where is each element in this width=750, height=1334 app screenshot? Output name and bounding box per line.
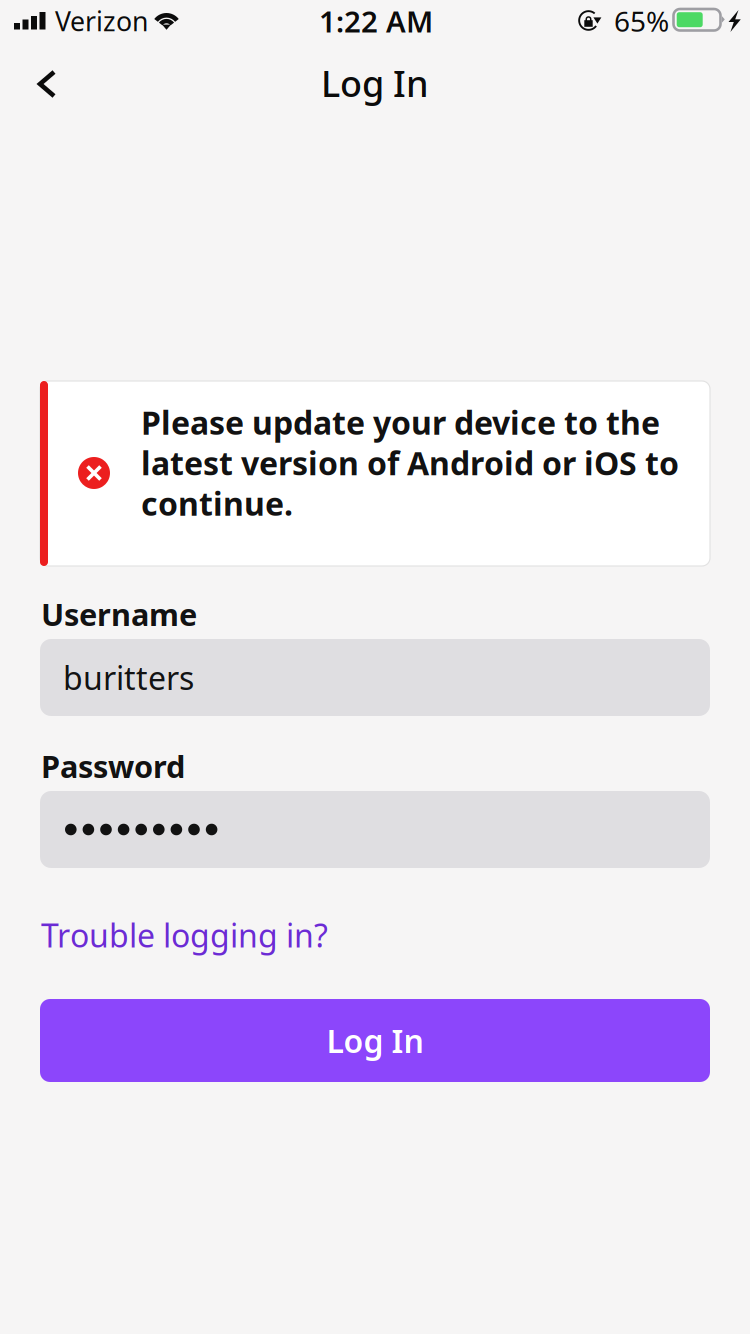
staticText: buritters [63, 656, 194, 699]
staticText: Username [41, 594, 197, 634]
button[interactable]: buritters [40, 639, 710, 716]
staticText: Please update your device to the latest … [141, 401, 679, 524]
button[interactable]: Password [40, 791, 710, 868]
staticText: Password [41, 746, 185, 786]
staticText: 1:22 AM [319, 1, 433, 40]
button[interactable]: Trouble logging in? [41, 913, 371, 957]
staticText: 65% [614, 2, 669, 40]
button[interactable]: Back [11, 48, 83, 120]
button[interactable]: Log In [40, 999, 710, 1082]
staticText: Verizon [55, 3, 148, 39]
staticText: Log In [321, 59, 429, 107]
staticText: Trouble logging in? [41, 914, 328, 956]
staticText: Log In [326, 1019, 423, 1062]
